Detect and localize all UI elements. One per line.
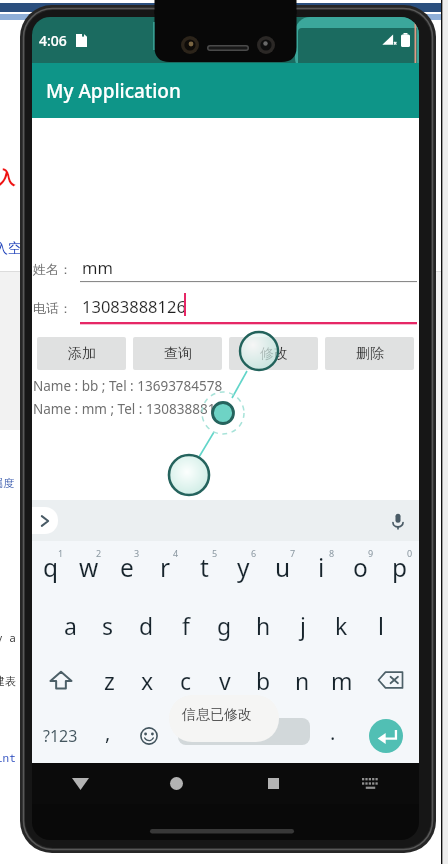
button[interactable]: j bbox=[283, 597, 322, 653]
staticText: int bbox=[0, 750, 16, 765]
staticText: 0 bbox=[407, 547, 413, 559]
button[interactable]: , bbox=[88, 708, 128, 764]
staticText: i bbox=[318, 551, 325, 584]
staticText: b bbox=[256, 665, 271, 696]
staticText: z bbox=[104, 665, 115, 696]
button[interactable]: 删除 bbox=[325, 337, 414, 370]
button[interactable]: s bbox=[89, 597, 127, 653]
button[interactable] bbox=[170, 708, 313, 764]
staticText: f bbox=[182, 610, 190, 641]
staticText: t bbox=[200, 551, 209, 584]
staticText: 电话： bbox=[33, 300, 72, 316]
button[interactable]: 查询 bbox=[133, 337, 222, 370]
staticText: 6 bbox=[251, 547, 257, 559]
staticText: s bbox=[102, 610, 114, 641]
staticText: y bbox=[237, 551, 250, 584]
staticText: 查询 bbox=[164, 345, 192, 363]
button[interactable]: 0 bbox=[380, 541, 419, 597]
button[interactable]: Switch keyboard bbox=[322, 763, 419, 804]
button[interactable]: d bbox=[127, 597, 166, 653]
button[interactable]: 修改 bbox=[229, 337, 318, 370]
button[interactable]: Backspace bbox=[361, 652, 419, 708]
staticText: a bbox=[64, 610, 77, 641]
button[interactable]: v bbox=[205, 652, 244, 708]
button[interactable]: a bbox=[51, 597, 89, 653]
staticText: c bbox=[180, 665, 192, 696]
staticText: 7 bbox=[290, 547, 296, 559]
button[interactable]: 添加 bbox=[37, 337, 126, 370]
staticText: 修改 bbox=[260, 345, 288, 363]
button[interactable]: g bbox=[205, 597, 244, 653]
button[interactable]: m bbox=[322, 652, 361, 708]
button[interactable]: b bbox=[244, 652, 283, 708]
staticText: k bbox=[335, 610, 348, 641]
button[interactable]: Home bbox=[128, 763, 225, 804]
staticText: My Application bbox=[46, 78, 181, 104]
staticText: j bbox=[300, 610, 306, 641]
button[interactable]: 6 bbox=[224, 541, 263, 597]
button[interactable]: Recent apps bbox=[225, 763, 322, 804]
staticText: r bbox=[160, 551, 171, 584]
staticText: 4:06 bbox=[39, 31, 67, 50]
staticText: v bbox=[219, 665, 231, 696]
staticText: x bbox=[141, 665, 154, 696]
staticText: 姓名： bbox=[33, 261, 72, 277]
button[interactable]: Shift bbox=[32, 652, 90, 708]
staticText: mm bbox=[82, 256, 113, 278]
button[interactable]: 7 bbox=[263, 541, 302, 597]
staticText: 入 bbox=[0, 167, 15, 190]
button[interactable]: l bbox=[361, 597, 400, 653]
staticText: 8 bbox=[329, 547, 335, 559]
staticText: p bbox=[392, 551, 408, 584]
staticText: 4 bbox=[173, 547, 179, 559]
button[interactable]: z bbox=[90, 652, 128, 708]
staticText: u bbox=[275, 551, 291, 584]
button[interactable]: ?123 bbox=[32, 708, 88, 764]
staticText: l bbox=[378, 610, 384, 641]
staticText: q bbox=[43, 551, 59, 584]
staticText: n bbox=[295, 665, 310, 696]
button[interactable]: More suggestions bbox=[32, 507, 58, 534]
staticText: . bbox=[330, 719, 336, 746]
staticText: 1 bbox=[58, 547, 64, 559]
staticText: e bbox=[120, 551, 134, 584]
button[interactable]: 1 bbox=[32, 541, 70, 597]
button[interactable]: c bbox=[166, 652, 205, 708]
staticText: 删除 bbox=[356, 345, 384, 363]
button[interactable]: 3 bbox=[108, 541, 146, 597]
button[interactable]: 5 bbox=[185, 541, 224, 597]
button[interactable]: Voice input bbox=[386, 509, 410, 533]
button[interactable]: 9 bbox=[341, 541, 380, 597]
button[interactable]: My Application bbox=[32, 63, 419, 118]
button[interactable]: n bbox=[283, 652, 322, 708]
staticText: 2 bbox=[96, 547, 102, 559]
button[interactable]: 4 bbox=[146, 541, 185, 597]
button[interactable]: k bbox=[322, 597, 361, 653]
staticText: 13083888126 bbox=[82, 295, 186, 317]
staticText: d bbox=[139, 610, 154, 641]
button[interactable]: 8 bbox=[302, 541, 341, 597]
button[interactable]: 2 bbox=[70, 541, 108, 597]
button[interactable]: Enter bbox=[369, 719, 403, 753]
staticText: 9 bbox=[368, 547, 374, 559]
staticText: 入空 bbox=[0, 240, 22, 258]
staticText: ?123 bbox=[43, 725, 78, 747]
staticText: 添加 bbox=[68, 345, 96, 363]
staticText: y a bbox=[0, 630, 16, 645]
button[interactable]: Back bbox=[32, 763, 128, 804]
button[interactable]: h bbox=[244, 597, 283, 653]
staticText: 5 bbox=[212, 547, 218, 559]
button[interactable]: x bbox=[128, 652, 166, 708]
staticText: h bbox=[256, 610, 271, 641]
staticText: Name : bb ; Tel : 13693784578 bbox=[33, 377, 223, 395]
staticText: w bbox=[79, 551, 99, 584]
button[interactable]: Emoji bbox=[128, 708, 170, 764]
staticText: 信息已修改 bbox=[182, 706, 252, 724]
staticText: Name : mm ; Tel : 13083888127 bbox=[33, 400, 231, 418]
staticText: m bbox=[331, 665, 353, 696]
staticText: 属度 bbox=[0, 476, 14, 490]
button[interactable]: f bbox=[166, 597, 205, 653]
staticText: 建表 bbox=[0, 674, 16, 688]
staticText: o bbox=[353, 551, 368, 584]
button[interactable]: . bbox=[313, 708, 353, 764]
